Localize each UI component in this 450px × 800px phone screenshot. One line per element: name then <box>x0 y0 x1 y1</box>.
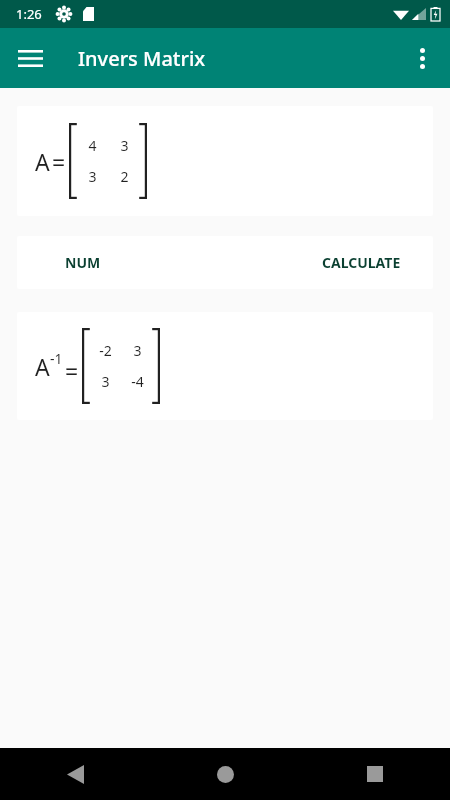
staticText: NUM <box>65 253 101 272</box>
staticText: A <box>35 351 50 382</box>
staticText: -4 <box>131 372 144 391</box>
staticText: 3 <box>101 372 110 391</box>
staticText: Invers Matrix <box>78 45 206 72</box>
staticText: 3 <box>88 167 97 186</box>
staticText: 1:26 <box>16 5 42 23</box>
button[interactable]: Open navigation menu <box>6 34 54 82</box>
button[interactable]: Recent apps <box>300 748 450 800</box>
button[interactable]: Back <box>0 748 150 800</box>
button[interactable]: NUM <box>51 243 115 282</box>
staticText: 2 <box>120 167 129 186</box>
staticText: = <box>65 355 79 386</box>
staticText: 4 <box>88 136 97 155</box>
button[interactable]: CALCULATE <box>308 243 415 282</box>
button[interactable]: More options <box>398 34 446 82</box>
staticText: CALCULATE <box>322 253 401 272</box>
button[interactable]: Home <box>150 748 300 800</box>
button[interactable]: A <box>17 312 433 420</box>
button[interactable]: A <box>17 106 433 216</box>
staticText: -2 <box>99 341 112 360</box>
staticText: A <box>35 146 50 177</box>
staticText: 3 <box>120 136 129 155</box>
staticText: 3 <box>133 341 142 360</box>
staticText: = <box>52 146 66 177</box>
staticText: -1 <box>50 349 63 368</box>
